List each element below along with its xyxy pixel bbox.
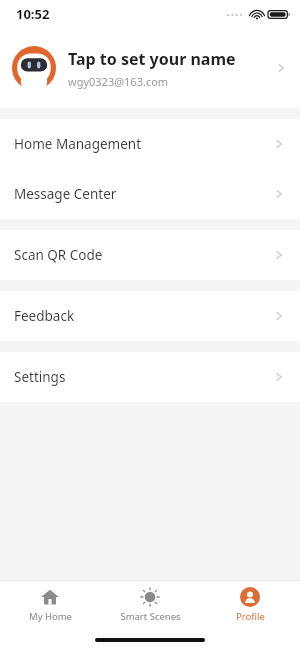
staticText: Smart Scenes [120, 610, 181, 623]
button[interactable]: Scan QR Code [0, 230, 300, 280]
button[interactable]: Profile [200, 587, 300, 623]
button[interactable]: Tap to set your name [0, 28, 300, 108]
staticText: 10:52 [16, 5, 50, 23]
staticText: My Home [29, 610, 72, 623]
staticText: Settings [14, 368, 272, 386]
button[interactable]: Settings [0, 352, 300, 402]
staticText: Scan QR Code [14, 246, 272, 264]
other: Profile [240, 587, 260, 607]
button[interactable]: Home Management [0, 119, 300, 169]
button[interactable]: My Home [0, 587, 100, 623]
staticText: Home Management [14, 135, 272, 153]
other: My Home [40, 587, 60, 607]
button[interactable]: Feedback [0, 291, 300, 341]
button[interactable]: Smart Scenes [100, 587, 200, 623]
staticText: Profile [236, 610, 265, 623]
staticText: Tap to set your name [68, 48, 236, 70]
button[interactable]: Message Center [0, 169, 300, 219]
staticText: Feedback [14, 307, 272, 325]
staticText: Message Center [14, 185, 272, 203]
other: Smart Scenes [140, 587, 160, 607]
staticText: wgy0323@163.com [68, 74, 169, 89]
